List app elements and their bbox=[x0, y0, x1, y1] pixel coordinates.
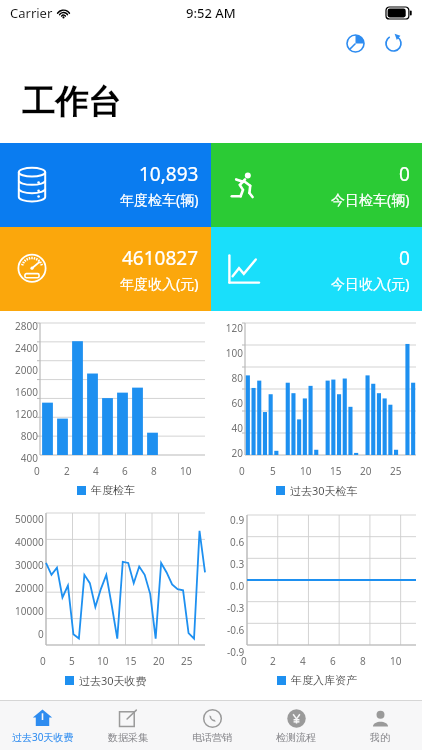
staticText: 40000 bbox=[15, 535, 44, 549]
staticText: 10 bbox=[300, 464, 312, 478]
staticText: 0 bbox=[40, 654, 46, 668]
staticText: 25 bbox=[390, 464, 402, 478]
button[interactable]: 电话营销 bbox=[170, 701, 254, 750]
staticText: 我的 bbox=[370, 731, 390, 744]
staticText: 年度收入(元) bbox=[120, 274, 199, 293]
staticText: 800 bbox=[20, 429, 38, 443]
staticText: 过去30天收费 bbox=[12, 730, 74, 744]
staticText: 0.0 bbox=[230, 579, 245, 593]
button[interactable]: 0 bbox=[211, 227, 422, 311]
button[interactable]: 数据采集 bbox=[85, 701, 170, 750]
staticText: 0 bbox=[38, 627, 44, 641]
staticText: 120 bbox=[225, 321, 243, 335]
staticText: 9:52 AM bbox=[186, 4, 236, 22]
staticText: 1600 bbox=[15, 385, 38, 399]
staticText: 50000 bbox=[15, 512, 44, 526]
staticText: 40 bbox=[231, 421, 243, 435]
staticText: 20 bbox=[231, 446, 243, 460]
staticText: 工作台 bbox=[22, 81, 121, 123]
staticText: 电话营销 bbox=[192, 731, 232, 744]
staticText: 8 bbox=[360, 654, 366, 668]
staticText: 4 bbox=[300, 654, 306, 668]
staticText: 2 bbox=[270, 654, 276, 668]
staticText: 4 bbox=[93, 464, 99, 478]
staticText: 2 bbox=[64, 464, 70, 478]
staticText: 0 bbox=[239, 464, 245, 478]
staticText: 10 bbox=[97, 654, 109, 668]
button[interactable]: 0 bbox=[211, 143, 422, 227]
staticText: 年度入库资产 bbox=[291, 673, 357, 687]
staticText: 0 bbox=[34, 464, 40, 478]
staticText: Carrier bbox=[10, 4, 53, 22]
staticText: 今日检车(辆) bbox=[331, 190, 410, 209]
staticText: 8 bbox=[151, 464, 157, 478]
staticText: 15 bbox=[125, 654, 137, 668]
staticText: 0 bbox=[399, 161, 410, 187]
staticText: 0.3 bbox=[230, 557, 245, 571]
staticText: 15 bbox=[330, 464, 342, 478]
staticText: 25 bbox=[181, 654, 193, 668]
staticText: 0.6 bbox=[230, 535, 245, 549]
staticText: 今日收入(元) bbox=[331, 274, 410, 293]
staticText: 20 bbox=[360, 464, 372, 478]
staticText: 6 bbox=[122, 464, 128, 478]
staticText: 10 bbox=[180, 464, 192, 478]
staticText: 年度检车(辆) bbox=[120, 190, 199, 209]
button[interactable]: 检测流程 bbox=[254, 701, 338, 750]
staticText: 2800 bbox=[15, 319, 38, 333]
staticText: 0 bbox=[241, 654, 247, 668]
staticText: 20 bbox=[153, 654, 165, 668]
button[interactable]: 4610827 bbox=[0, 227, 211, 311]
staticText: 数据采集 bbox=[108, 731, 148, 744]
staticText: -0.3 bbox=[227, 601, 245, 615]
staticText: 5 bbox=[270, 464, 276, 478]
staticText: 年度检车 bbox=[91, 483, 135, 497]
staticText: 6 bbox=[330, 654, 336, 668]
staticText: 80 bbox=[231, 371, 243, 385]
staticText: 10000 bbox=[15, 604, 44, 618]
button[interactable]: 我的 bbox=[338, 701, 422, 750]
staticText: 5 bbox=[69, 654, 75, 668]
staticText: 0.9 bbox=[230, 513, 245, 527]
staticText: 过去30天收费 bbox=[79, 673, 147, 688]
staticText: 100 bbox=[225, 346, 243, 360]
staticText: 4610827 bbox=[122, 245, 199, 271]
staticText: 2400 bbox=[15, 341, 38, 355]
staticText: 检测流程 bbox=[276, 731, 316, 744]
button[interactable]: Refresh bbox=[378, 28, 408, 58]
staticText: 30000 bbox=[15, 558, 44, 572]
staticText: 1200 bbox=[15, 407, 38, 421]
staticText: 10,893 bbox=[139, 161, 199, 187]
staticText: -0.9 bbox=[227, 645, 245, 659]
staticText: 过去30天检车 bbox=[290, 483, 358, 498]
button[interactable]: 过去30天收费 bbox=[0, 701, 85, 750]
staticText: 10 bbox=[390, 654, 402, 668]
staticText: -0.6 bbox=[227, 623, 245, 637]
staticText: 2000 bbox=[15, 363, 38, 377]
staticText: 400 bbox=[20, 451, 38, 465]
staticText: 60 bbox=[231, 396, 243, 410]
button[interactable]: 10,893 bbox=[0, 143, 211, 227]
staticText: 0 bbox=[399, 245, 410, 271]
staticText: 20000 bbox=[15, 581, 44, 595]
button[interactable]: Statistics bbox=[340, 28, 370, 58]
